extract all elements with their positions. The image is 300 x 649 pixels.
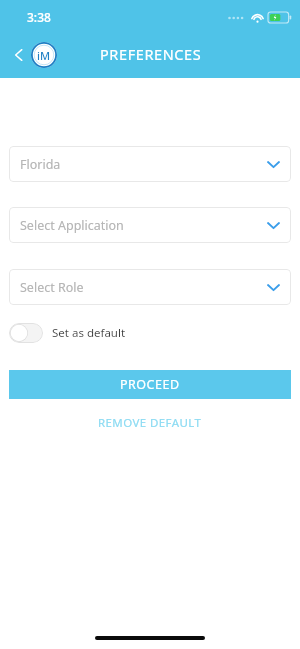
staticText: iM [37, 48, 51, 63]
staticText: Select Role [20, 279, 84, 296]
staticText: REMOVE DEFAULT [98, 415, 202, 431]
button[interactable]: PROCEED [9, 370, 291, 399]
staticText: PROCEED [120, 376, 180, 393]
button[interactable]: Select Role [9, 269, 291, 305]
staticText: 3:38 [27, 9, 51, 25]
button[interactable]: Back [4, 40, 34, 70]
staticText: Select Application [20, 217, 124, 234]
staticText: Set as default [52, 325, 126, 341]
button[interactable]: Florida [9, 146, 291, 182]
button[interactable]: Select Application [9, 207, 291, 243]
button[interactable]: REMOVE DEFAULT [98, 415, 202, 431]
staticText: PREFERENCES [100, 44, 202, 64]
button[interactable]: Set as default [9, 319, 126, 347]
staticText: Florida [20, 156, 61, 173]
button[interactable]: App logo [31, 42, 57, 68]
